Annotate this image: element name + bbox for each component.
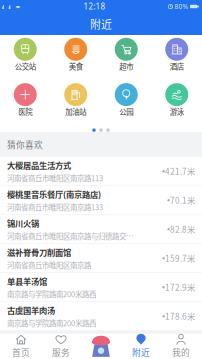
button[interactable]: 美食 [50, 38, 101, 83]
staticText: 医院 [18, 106, 32, 117]
staticText: 159.7米 [165, 252, 195, 264]
button[interactable]: 超市 [101, 38, 151, 83]
button[interactable]: 公交站 [0, 38, 50, 83]
staticText: 锦川火锅 [7, 217, 39, 229]
staticText: 樱桃里音乐餐厅(南京路店) [7, 188, 101, 200]
staticText: 附近 [132, 346, 150, 358]
button[interactable]: 公园 [101, 83, 151, 128]
button[interactable]: 游泳 [151, 83, 202, 128]
button[interactable]: 酒店 [151, 38, 202, 83]
staticText: 酒店 [170, 61, 184, 72]
button[interactable]: 锦川火锅 [0, 215, 202, 244]
staticText: 80% [174, 2, 188, 11]
staticText: 大樱居品生活方式 [7, 159, 71, 171]
staticText: 172.9米 [165, 281, 195, 293]
staticText: 河南省商丘市睢阳区南京路133 [7, 201, 103, 212]
button[interactable]: 首页 [1, 334, 41, 359]
staticText: 游泳 [170, 106, 184, 117]
staticText: 82.8米 [170, 223, 195, 235]
staticText: 南京路与学院路南200米路西 [7, 317, 96, 328]
button[interactable]: 我的 [161, 334, 201, 359]
button[interactable]: 加油站 [50, 83, 101, 128]
staticText: 古虞国羊肉汤 [7, 304, 55, 316]
staticText: 河南省商丘市睢阳区南京路113 [7, 172, 103, 183]
button[interactable]: 滋补脊骨刀削面馆 [0, 244, 202, 273]
staticText: 猜你喜欢 [7, 138, 43, 151]
staticText: 加油站 [65, 106, 86, 117]
button[interactable]: 单县羊汤馆 [0, 273, 202, 302]
staticText: 附近 [90, 16, 112, 32]
staticText: 美食 [69, 61, 83, 72]
staticText: 421.7米 [165, 165, 195, 177]
button[interactable]: 服务 [41, 334, 81, 359]
staticText: 单县羊汤馆 [7, 275, 47, 287]
staticText: 服务 [52, 346, 70, 358]
button[interactable]: 发现 [81, 334, 121, 359]
staticText: 70.1米 [170, 194, 195, 206]
staticText: 首页 [12, 346, 30, 358]
button[interactable]: 医院 [0, 83, 50, 128]
staticText: 河南省商丘市睢阳区南京路 [7, 259, 91, 270]
staticText: 滋补脊骨刀削面馆 [7, 246, 71, 258]
staticText: 河南省商丘市睢阳区南京路与归德路交… [7, 230, 133, 241]
button[interactable]: 大樱居品生活方式 [0, 157, 202, 186]
button[interactable]: 古虞国羊肉汤 [0, 302, 202, 331]
staticText: 公园 [119, 106, 133, 117]
staticText: 公交站 [15, 61, 36, 72]
staticText: 178.6米 [165, 310, 195, 322]
staticText: 南京路与学院路南200米路西 [7, 288, 96, 299]
staticText: 超市 [119, 61, 133, 72]
staticText: 我的 [172, 346, 190, 358]
button[interactable]: 樱桃里音乐餐厅(南京路店) [0, 186, 202, 215]
staticText: 12:18 [83, 1, 105, 12]
button[interactable]: 附近 [121, 334, 161, 359]
